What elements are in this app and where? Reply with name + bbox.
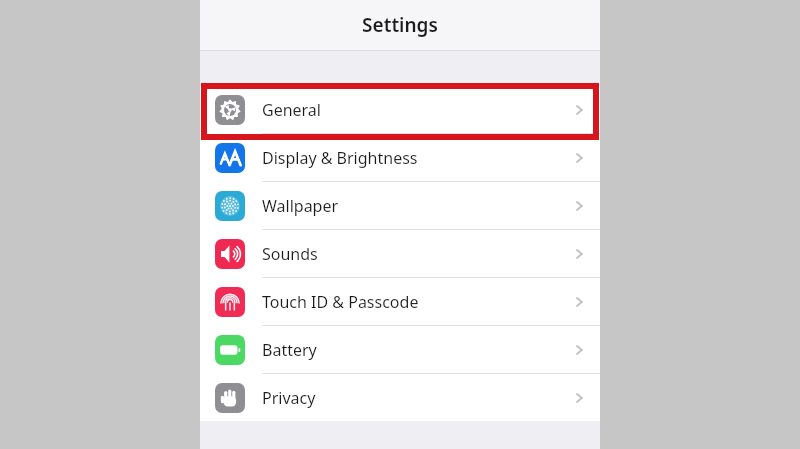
other: Open Battery xyxy=(572,343,586,357)
other: Open Display & Brightness xyxy=(572,151,586,165)
staticText: Wallpaper xyxy=(262,195,339,217)
button[interactable]: Sounds xyxy=(200,230,600,277)
other: Open Sounds xyxy=(572,247,586,261)
other: Open Wallpaper xyxy=(572,199,586,213)
button[interactable]: Touch ID & Passcode xyxy=(200,278,600,325)
other: Open Touch ID & Passcode xyxy=(572,295,586,309)
button[interactable]: Battery xyxy=(200,326,600,373)
staticText: Settings xyxy=(362,12,438,38)
button[interactable]: General xyxy=(200,86,600,133)
staticText: Sounds xyxy=(262,243,318,265)
button[interactable]: Wallpaper xyxy=(200,182,600,229)
other: Open Privacy xyxy=(572,391,586,405)
other: Open General xyxy=(572,103,586,117)
button[interactable]: Privacy xyxy=(200,374,600,421)
staticText: Battery xyxy=(262,339,317,361)
staticText: Display & Brightness xyxy=(262,147,418,169)
staticText: Touch ID & Passcode xyxy=(262,291,419,313)
staticText: General xyxy=(262,99,321,121)
button[interactable]: Display & Brightness xyxy=(200,134,600,181)
staticText: Privacy xyxy=(262,387,316,409)
